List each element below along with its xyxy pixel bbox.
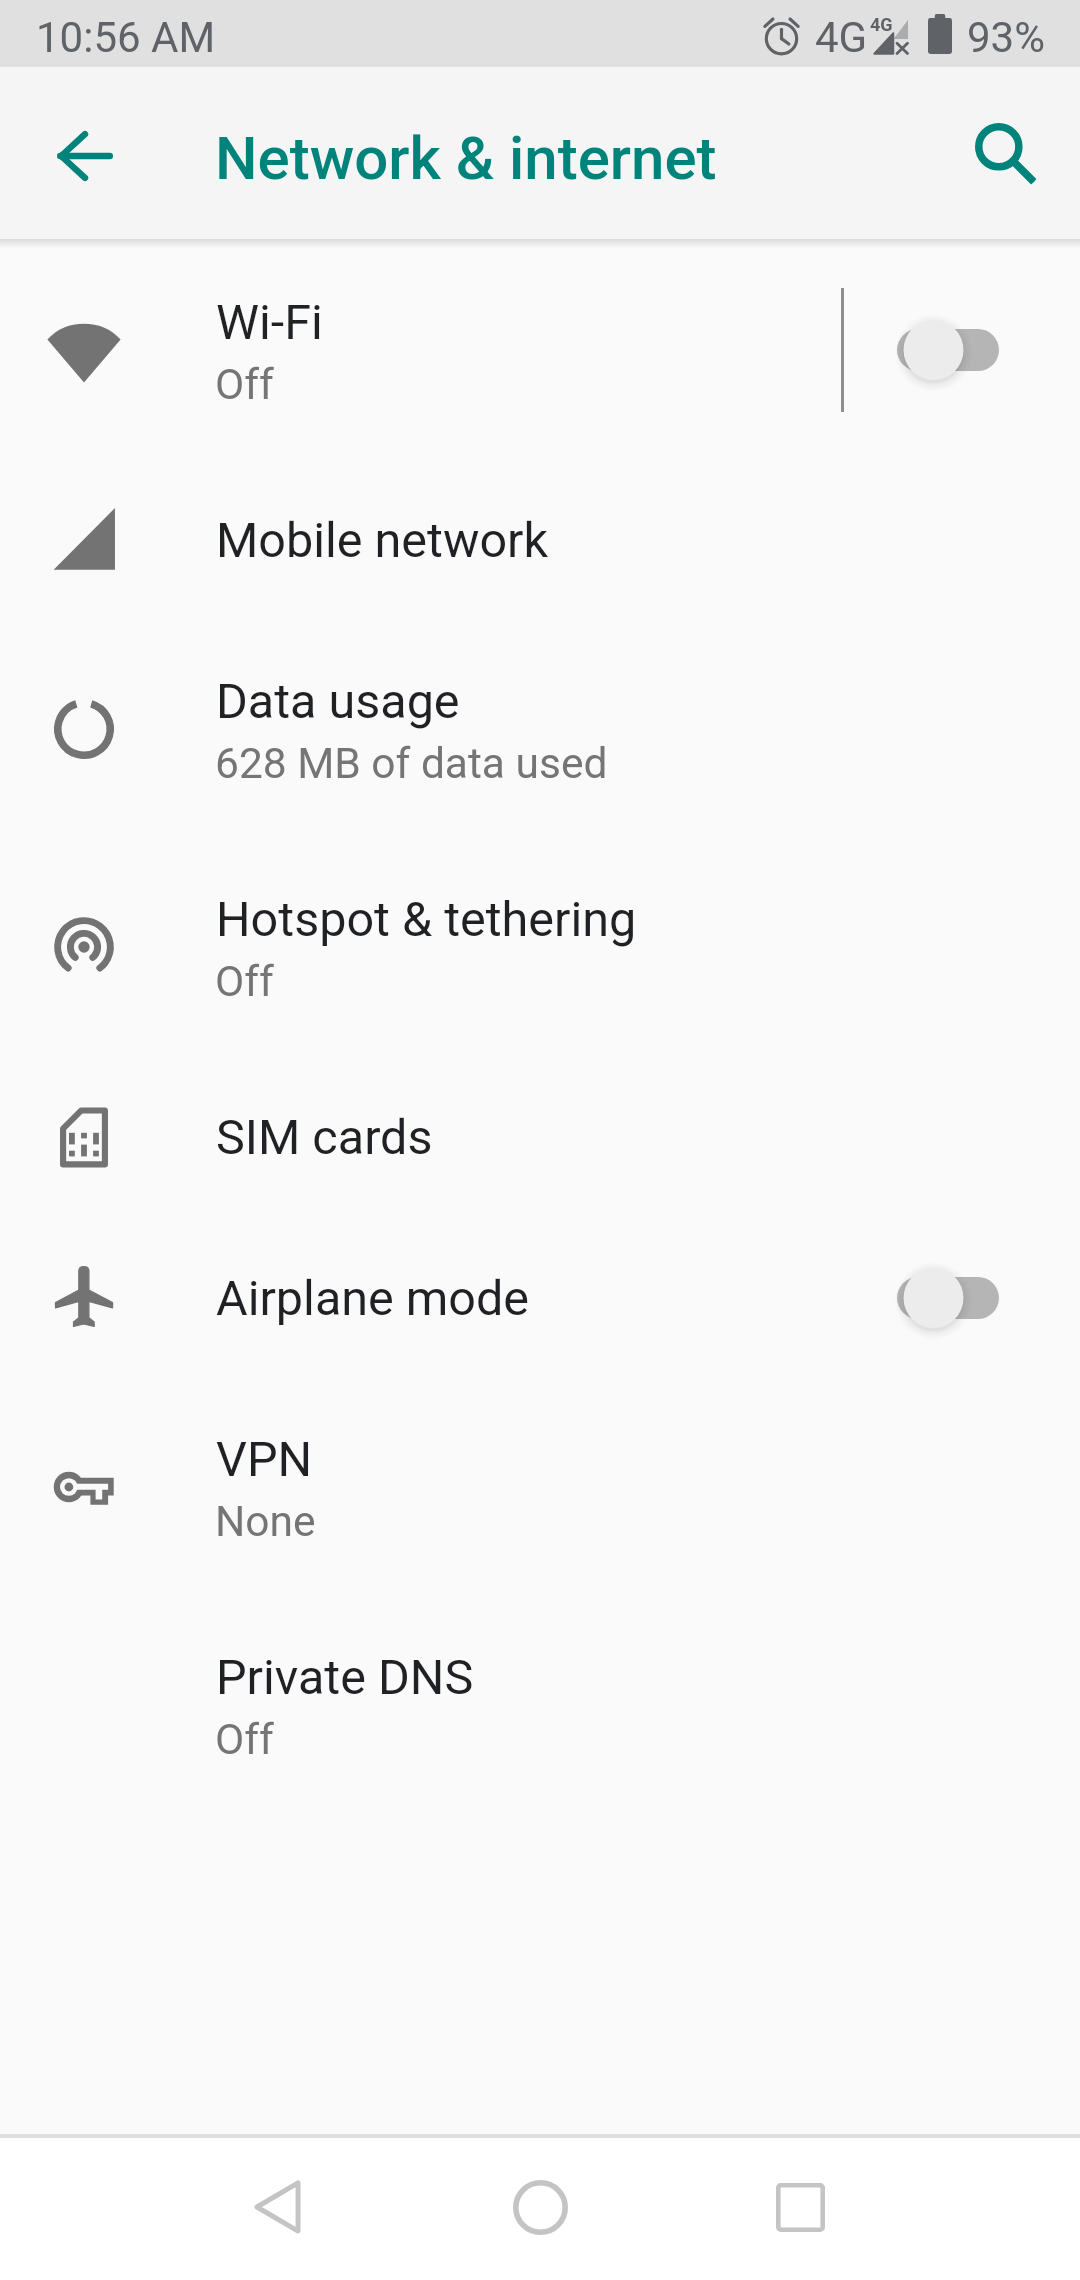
staticText: 93% [967,13,1045,62]
staticText: Hotspot & tethering [216,891,637,948]
staticText: Data usage [216,673,460,730]
staticText: None [215,1497,316,1547]
button[interactable]: Wi-Fi toggle [880,290,1020,410]
button[interactable]: SIM cards [0,1056,1080,1217]
button[interactable]: Recent apps [750,2157,850,2257]
staticText: Mobile network [216,512,549,569]
staticText: 628 MB of data used [215,739,608,789]
button[interactable]: Navigate up [37,108,133,204]
staticText: Airplane mode [216,1270,530,1327]
staticText: Off [215,957,274,1007]
button[interactable]: Airplane mode [0,1217,1080,1378]
button[interactable]: VPN [0,1378,1080,1596]
button[interactable]: Home [490,2157,590,2257]
staticText: VPN [216,1431,313,1488]
staticText: Off [215,1715,274,1765]
staticText: SIM cards [216,1109,433,1166]
button[interactable]: Hotspot & tethering [0,838,1080,1056]
staticText: Wi-Fi [216,294,323,351]
staticText: Network & internet [215,123,717,193]
button[interactable]: Mobile network [0,459,1080,620]
button[interactable]: Private DNS [0,1596,1080,1814]
button[interactable]: Back [227,2157,327,2257]
button[interactable]: Airplane mode toggle [880,1238,1020,1358]
staticText: Private DNS [216,1649,474,1706]
button[interactable]: Search [952,100,1048,196]
button[interactable]: Wi-Fi [0,241,1080,459]
staticText: 10:56 AM [36,13,216,62]
staticText: Off [215,360,274,410]
staticText: 4G [815,13,868,62]
button[interactable]: Data usage [0,620,1080,838]
staticText: 4G [870,14,893,35]
